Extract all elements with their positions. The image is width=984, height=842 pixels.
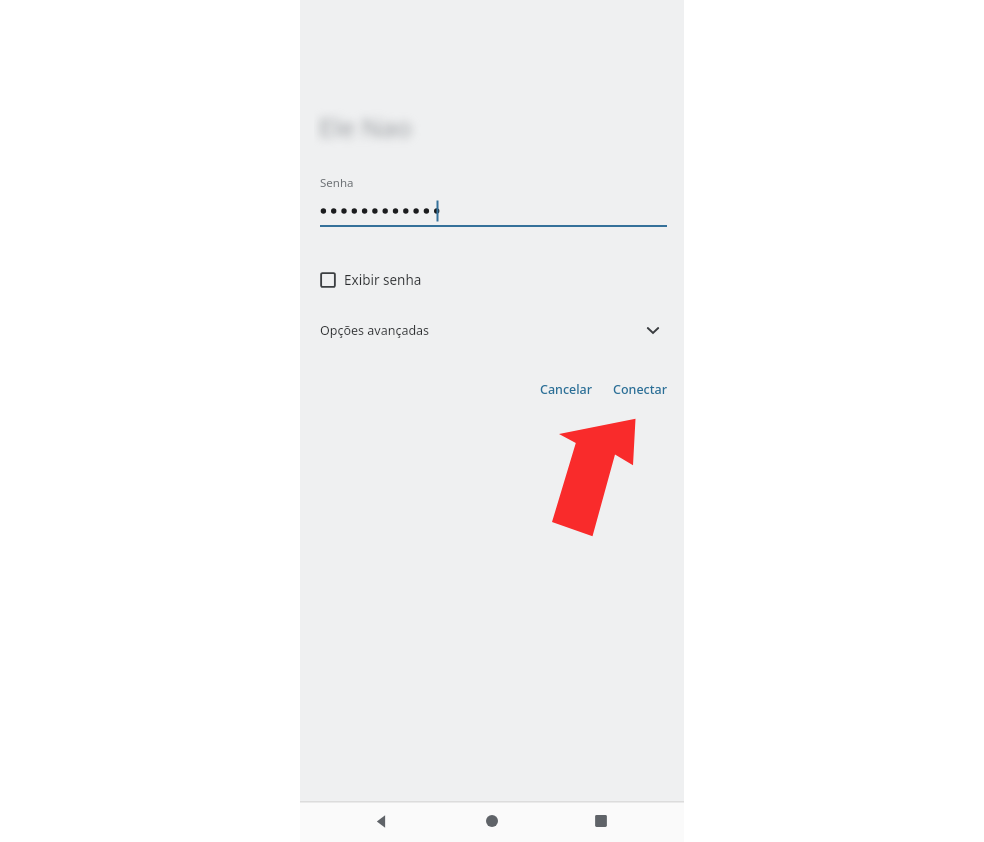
staticText: Conectar [613,381,667,398]
button[interactable]: Opções avançadas [314,312,670,348]
staticText: Opções avançadas [320,322,430,339]
other: Expandir opções avançadas [644,321,662,339]
staticText: Senha [320,175,354,191]
button[interactable]: Voltar [366,806,396,836]
button[interactable]: Conectar [604,375,675,404]
button[interactable]: Início [477,806,507,836]
button[interactable]: Apps recentes [586,806,616,836]
button[interactable]: Cancelar [531,375,602,404]
staticText: Exibir senha [344,271,422,289]
button[interactable]: Campo de senha [320,196,668,232]
staticText: Cancelar [540,381,593,398]
button[interactable]: Exibir senha [314,264,459,296]
staticText: Ele Nao [319,109,412,144]
